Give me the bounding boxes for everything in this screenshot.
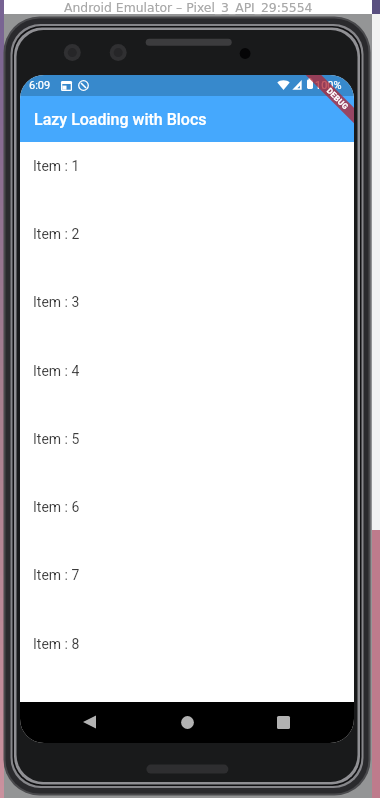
button[interactable]: Item : 7 [20,551,354,619]
button[interactable]: Item : 1 [20,142,354,210]
button[interactable]: Home [170,705,204,739]
staticText: Item : 5 [33,431,80,447]
button[interactable]: Item : 2 [20,210,354,278]
staticText: 100% [315,79,342,92]
button[interactable]: Recents [266,705,300,739]
button[interactable]: Item : 8 [20,620,354,688]
staticText: DEBUG [325,86,350,112]
button[interactable]: Back [72,705,106,739]
staticText: Lazy Loading with Blocs [34,110,207,129]
staticText: Item : 4 [33,363,80,379]
staticText: Android Emulator – Pixel_3_API_29:5554 [64,0,313,14]
staticText: Item : 7 [33,567,80,583]
staticText: 6:09 [29,79,51,92]
button[interactable]: Item : 4 [20,347,354,415]
button[interactable]: Item : 5 [20,415,354,483]
staticText: Item : 8 [33,636,80,652]
button[interactable]: Item : 9 [20,688,354,743]
staticText: Item : 1 [33,158,80,174]
staticText: Item : 6 [33,499,80,515]
button[interactable]: Item : 6 [20,483,354,551]
staticText: Item : 2 [33,226,80,242]
staticText: Item : 3 [33,294,80,310]
button[interactable]: Item : 3 [20,278,354,346]
